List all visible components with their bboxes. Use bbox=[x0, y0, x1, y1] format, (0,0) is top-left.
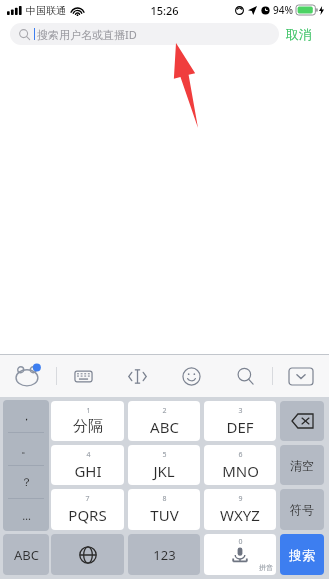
staticText: 8 bbox=[162, 494, 167, 504]
staticText: 4 bbox=[86, 450, 91, 460]
staticText: ABC bbox=[14, 546, 39, 564]
button[interactable]: 5 bbox=[128, 445, 200, 485]
button[interactable]: Space bbox=[204, 534, 276, 575]
staticText: 0 bbox=[238, 537, 243, 547]
staticText: MNO bbox=[222, 461, 259, 481]
staticText: WXYZ bbox=[220, 505, 260, 525]
button[interactable]: 123 bbox=[128, 534, 200, 575]
staticText: ？ bbox=[21, 475, 32, 489]
staticText: JKL bbox=[153, 461, 175, 481]
button[interactable]: Hide keyboard bbox=[273, 355, 329, 397]
button[interactable]: 9 bbox=[204, 489, 276, 530]
button[interactable]: ABC bbox=[3, 534, 49, 575]
staticText: 5 bbox=[162, 450, 167, 460]
button[interactable]: emoji bbox=[164, 355, 218, 397]
staticText: 分隔 bbox=[73, 417, 103, 436]
staticText: 2 bbox=[162, 406, 167, 416]
button[interactable]: 取消 bbox=[279, 22, 319, 46]
button[interactable]: search bbox=[218, 355, 272, 397]
button[interactable]: ， bbox=[3, 400, 49, 432]
button[interactable]: 1 bbox=[51, 401, 124, 441]
button[interactable]: 7 bbox=[51, 489, 124, 530]
button[interactable]: Input method logo bbox=[0, 355, 56, 397]
button[interactable]: 符号 bbox=[280, 489, 324, 530]
button[interactable]: 3 bbox=[204, 401, 276, 441]
button[interactable]: Backspace bbox=[280, 401, 324, 441]
button[interactable]: cursor bbox=[110, 355, 164, 397]
button[interactable]: 搜索 bbox=[280, 534, 324, 575]
staticText: 1 bbox=[86, 406, 91, 416]
staticText: DEF bbox=[226, 417, 254, 437]
staticText: 7 bbox=[85, 494, 90, 504]
staticText: ABC bbox=[150, 417, 179, 437]
staticText: 9 bbox=[238, 494, 243, 504]
button[interactable]: … bbox=[3, 499, 49, 531]
button[interactable]: 8 bbox=[128, 489, 200, 530]
button[interactable]: kb bbox=[57, 355, 110, 397]
staticText: PQRS bbox=[68, 505, 107, 525]
staticText: … bbox=[22, 508, 31, 523]
staticText: GHI bbox=[74, 461, 102, 481]
staticText: ， bbox=[21, 409, 32, 423]
staticText: 3 bbox=[238, 406, 243, 416]
button[interactable]: 。 bbox=[3, 433, 49, 465]
staticText: TUV bbox=[150, 505, 179, 525]
button[interactable]: 6 bbox=[204, 445, 276, 485]
staticText: 搜索用户名或直播ID bbox=[37, 27, 137, 42]
staticText: 中国联通 bbox=[26, 4, 66, 17]
staticText: 清空 bbox=[290, 458, 314, 473]
staticText: 6 bbox=[238, 450, 243, 460]
button[interactable]: Globe bbox=[51, 534, 124, 575]
staticText: 取消 bbox=[286, 26, 312, 42]
staticText: 15:26 bbox=[150, 3, 179, 18]
staticText: 搜索 bbox=[289, 547, 315, 563]
staticText: 94% bbox=[273, 3, 293, 17]
button[interactable]: 清空 bbox=[280, 445, 324, 485]
button[interactable]: ？ bbox=[3, 466, 49, 498]
button[interactable]: 搜索用户名或直播ID bbox=[10, 23, 279, 45]
staticText: 123 bbox=[153, 546, 176, 564]
button[interactable]: 2 bbox=[128, 401, 200, 441]
staticText: 拼音 bbox=[259, 563, 273, 572]
staticText: 符号 bbox=[290, 502, 314, 517]
button[interactable]: 4 bbox=[51, 445, 124, 485]
staticText: 。 bbox=[21, 442, 32, 456]
